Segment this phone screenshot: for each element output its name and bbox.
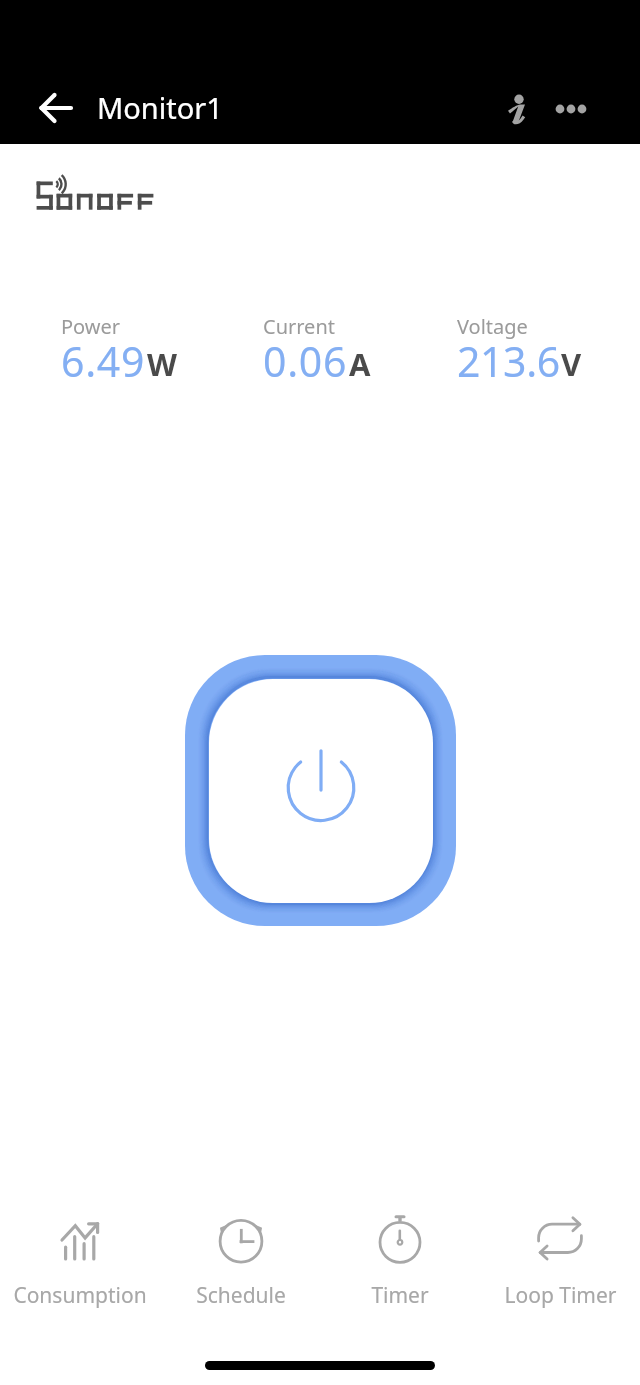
- button[interactable]: Back: [26, 78, 86, 138]
- staticText: Power: [61, 313, 121, 340]
- button[interactable]: Loop Timer: [480, 1210, 640, 1320]
- staticText: 0.06: [263, 333, 348, 389]
- button[interactable]: Info: [489, 83, 545, 139]
- button[interactable]: Consumption: [0, 1210, 160, 1320]
- staticText: 213.6: [457, 333, 560, 389]
- staticText: V: [561, 343, 582, 385]
- staticText: Consumption: [13, 1281, 147, 1310]
- button[interactable]: Schedule: [161, 1210, 321, 1320]
- staticText: 6.49: [61, 333, 146, 389]
- button[interactable]: Timer: [320, 1210, 480, 1320]
- staticText: Schedule: [196, 1281, 286, 1310]
- staticText: Monitor1: [97, 88, 223, 127]
- staticText: W: [147, 343, 177, 385]
- button[interactable]: More options: [543, 81, 599, 137]
- staticText: Voltage: [457, 313, 528, 340]
- staticText: Loop Timer: [504, 1281, 617, 1310]
- button[interactable]: Power toggle: [185, 655, 456, 926]
- staticText: A: [349, 343, 371, 385]
- staticText: Current: [263, 313, 335, 340]
- staticText: Timer: [371, 1281, 429, 1310]
